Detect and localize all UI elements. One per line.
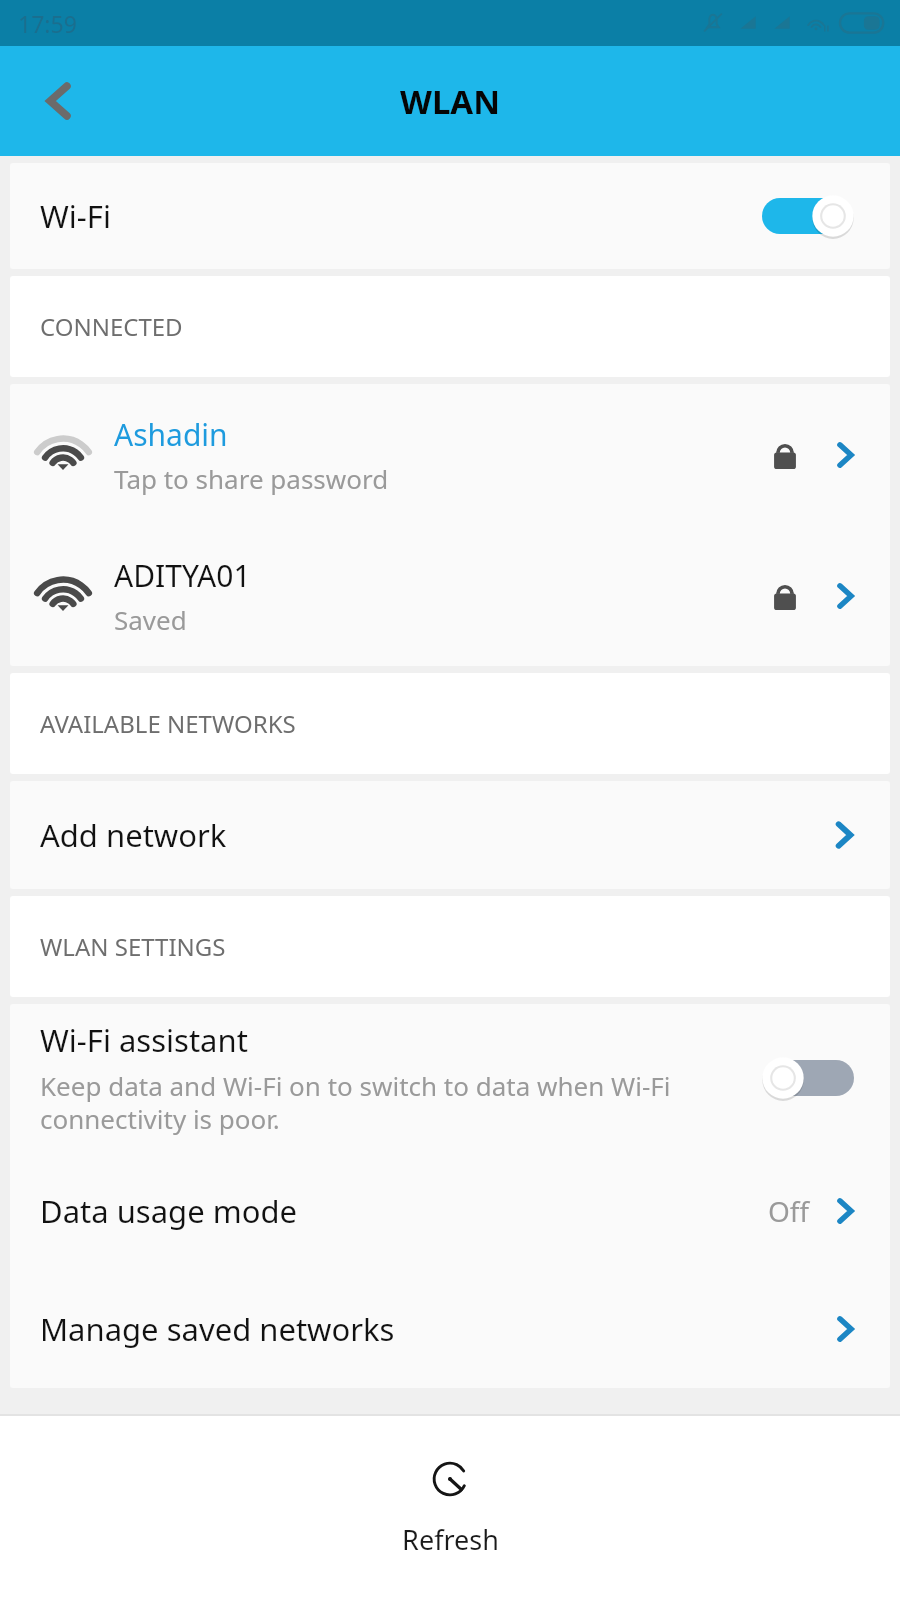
button[interactable]: Wi-Fi <box>10 163 890 269</box>
staticText: CONNECTED <box>40 310 183 343</box>
staticText: 17:59 <box>18 8 77 39</box>
staticText: Manage saved networks <box>40 1308 395 1350</box>
button[interactable]: Wi-Fi assistant <box>10 1004 890 1152</box>
staticText: Tap to share password <box>114 461 389 496</box>
staticText: Ashadin <box>114 414 228 455</box>
staticText: AVAILABLE NETWORKS <box>40 707 296 740</box>
button[interactable]: Ashadin <box>10 384 890 525</box>
button[interactable]: Refresh <box>340 1449 560 1566</box>
staticText: Saved <box>114 602 187 637</box>
staticText: Off <box>768 1192 810 1230</box>
button[interactable]: Manage saved networks <box>10 1270 890 1388</box>
button[interactable]: Add network <box>10 781 890 889</box>
staticText: Refresh <box>402 1521 499 1558</box>
staticText: Wi-Fi <box>40 195 111 237</box>
staticText: WLAN <box>400 79 501 124</box>
button[interactable]: ADITYA01 <box>10 525 890 666</box>
staticText: Data usage mode <box>40 1190 297 1232</box>
staticText: WLAN SETTINGS <box>40 930 226 963</box>
button[interactable]: Data usage mode <box>10 1152 890 1270</box>
staticText: Keep data and Wi-Fi on to switch to data… <box>40 1068 746 1137</box>
staticText: ADITYA01 <box>114 555 251 596</box>
staticText: Add network <box>40 814 227 856</box>
staticText: Wi-Fi assistant <box>40 1019 248 1061</box>
button[interactable]: Back <box>26 68 92 134</box>
